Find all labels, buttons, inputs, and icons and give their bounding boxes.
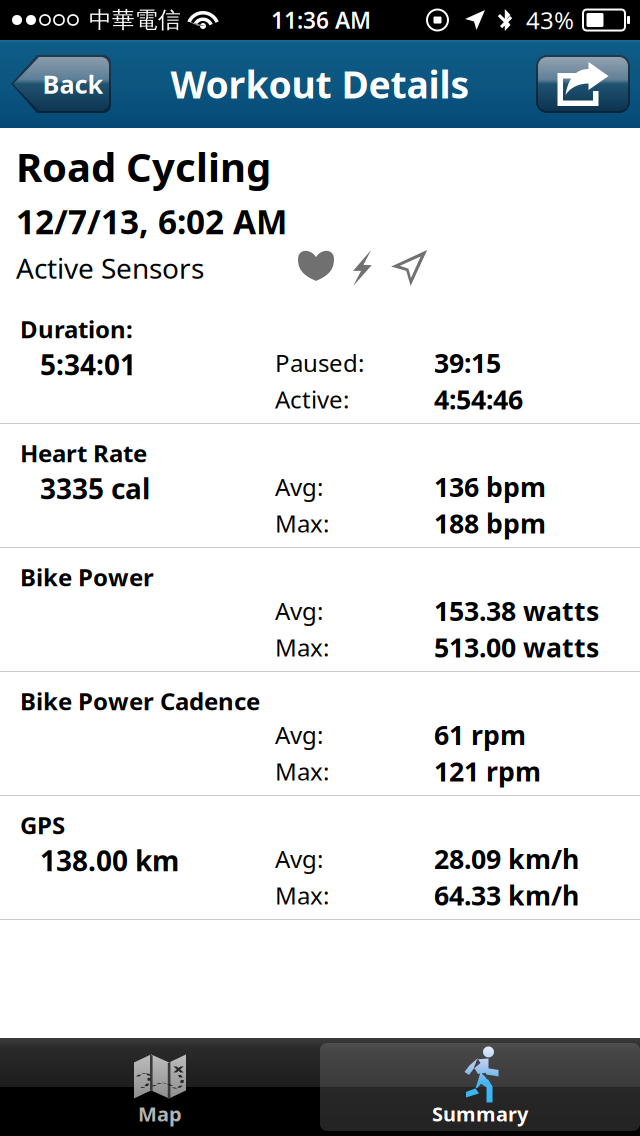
staticText: 3335 cal	[40, 470, 150, 507]
staticText: Heart Rate	[20, 437, 147, 469]
staticText: 4:54:46	[434, 381, 523, 417]
button[interactable]: Map	[0, 1038, 320, 1136]
staticText: Avg:	[275, 843, 323, 875]
staticText: Summary	[432, 1100, 528, 1127]
staticText: 136 bpm	[434, 469, 546, 504]
staticText: GPS	[20, 809, 65, 841]
staticText: 153.38 watts	[434, 593, 599, 628]
staticText: Map	[138, 1100, 182, 1127]
staticText: Bike Power Cadence	[20, 685, 260, 717]
staticText: Avg:	[275, 595, 323, 627]
staticText: Active:	[275, 383, 349, 415]
staticText: 中華電信	[89, 6, 181, 34]
staticText: 43%	[526, 4, 574, 36]
staticText: 188 bpm	[434, 505, 546, 541]
staticText: Max:	[275, 755, 329, 787]
staticText: 61 rpm	[434, 717, 526, 752]
staticText: 138.00 km	[40, 842, 179, 879]
staticText: 12/7/13, 6:02 AM	[16, 199, 287, 243]
staticText: Back	[42, 67, 103, 101]
button[interactable]: Back	[11, 55, 111, 113]
staticText: Workout Details	[170, 59, 469, 109]
staticText: 39:15	[434, 345, 501, 380]
button[interactable]: Share	[536, 55, 630, 113]
staticText: Road Cycling	[16, 140, 271, 193]
staticText: 513.00 watts	[434, 629, 599, 665]
staticText: Avg:	[275, 471, 323, 503]
staticText: 11:36 AM	[271, 5, 371, 35]
staticText: Avg:	[275, 719, 323, 751]
staticText: 28.09 km/h	[434, 841, 579, 876]
staticText: 5:34:01	[40, 346, 136, 383]
staticText: Max:	[275, 507, 329, 539]
staticText: Bike Power	[20, 561, 154, 593]
staticText: Max:	[275, 879, 329, 911]
staticText: 64.33 km/h	[434, 877, 579, 913]
staticText: 121 rpm	[434, 753, 541, 789]
staticText: Active Sensors	[16, 249, 204, 287]
button[interactable]: Summary	[320, 1038, 640, 1136]
staticText: Max:	[275, 631, 329, 663]
staticText: Duration:	[20, 313, 133, 345]
staticText: Paused:	[275, 347, 364, 379]
